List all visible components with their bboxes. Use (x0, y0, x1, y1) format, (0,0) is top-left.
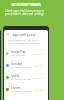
staticText: List of apps that have access to your Go… (8, 39, 41, 44)
button[interactable]: Back (5, 31, 10, 36)
button[interactable]: Translate (4, 59, 48, 71)
staticText: ALLOWED (34, 77, 44, 80)
staticText: Check apps that have access to your phon… (3, 9, 46, 16)
staticText: ALLOWED (34, 89, 44, 92)
staticText: Last used a week ago (11, 90, 32, 93)
staticText: SEE SECURITY THREATS (11, 3, 41, 7)
staticText: Last used today (11, 54, 26, 57)
staticText: Chrome (11, 86, 21, 90)
staticText: ALLOWED (34, 65, 44, 68)
staticText: Google Play (11, 50, 26, 54)
staticText: Last used 3 days ago (11, 66, 31, 69)
staticText: ALLOWED (34, 53, 44, 56)
staticText: Translate (11, 62, 23, 66)
staticText: Last used 5 days ago (11, 78, 31, 81)
staticText: Apps with access (13, 33, 36, 37)
button[interactable]: Chrome (4, 83, 48, 95)
button[interactable]: Spotify (4, 71, 48, 83)
button[interactable]: Google Play (4, 47, 48, 59)
staticText: Spotify (11, 74, 20, 78)
